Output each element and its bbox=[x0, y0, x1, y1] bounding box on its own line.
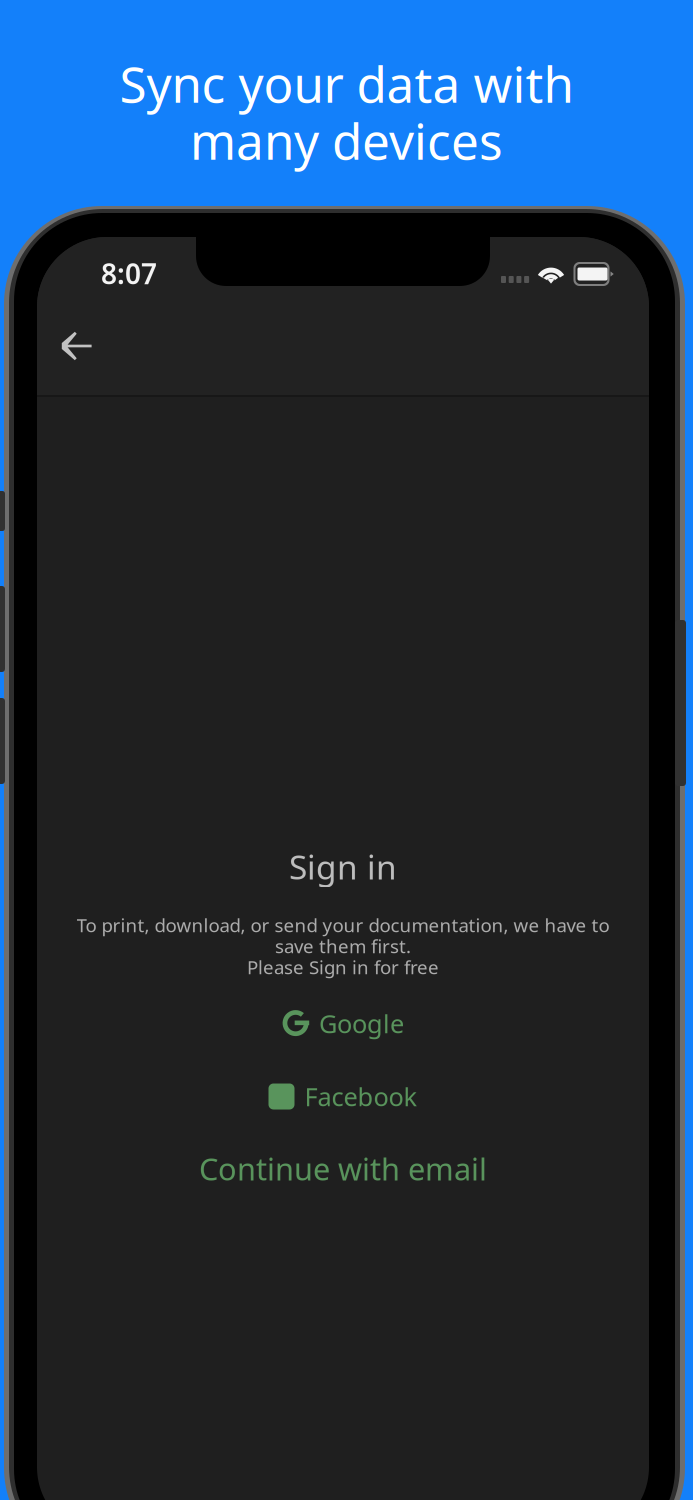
staticText: save them first. bbox=[275, 934, 411, 958]
staticText: Sign in bbox=[289, 844, 397, 889]
staticText: Google bbox=[319, 1007, 404, 1040]
staticText: Sync your data with bbox=[119, 51, 573, 116]
button[interactable]: Google bbox=[37, 995, 649, 1051]
staticText: Facebook bbox=[304, 1080, 417, 1113]
staticText: Please Sign in for free bbox=[247, 955, 439, 979]
button[interactable]: Continue with email bbox=[37, 1140, 649, 1196]
staticText: many devices bbox=[190, 108, 503, 173]
button[interactable]: Back bbox=[37, 304, 129, 388]
staticText: 8:07 bbox=[101, 255, 157, 292]
staticText: Continue with email bbox=[199, 1148, 487, 1189]
staticText: To print, download, or send your documen… bbox=[76, 913, 609, 937]
button[interactable]: Facebook bbox=[37, 1068, 649, 1124]
